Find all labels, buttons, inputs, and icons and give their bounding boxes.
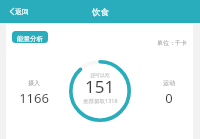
- button[interactable]: 能量分析: [12, 31, 48, 43]
- staticText: 饮食: [92, 7, 109, 18]
- staticText: 摄入: [28, 79, 40, 87]
- staticText: 单位：千卡: [157, 39, 187, 47]
- staticText: 还可以吃: [90, 72, 110, 78]
- staticText: 运动: [163, 79, 175, 87]
- staticText: 推荐摄取1318: [83, 97, 118, 105]
- staticText: 返回: [15, 7, 29, 16]
- button[interactable]: 返回: [0, 3, 37, 20]
- staticText: 能量分析: [17, 35, 43, 43]
- staticText: 0: [165, 89, 173, 107]
- staticText: 1166: [19, 89, 49, 107]
- staticText: 151: [85, 75, 115, 98]
